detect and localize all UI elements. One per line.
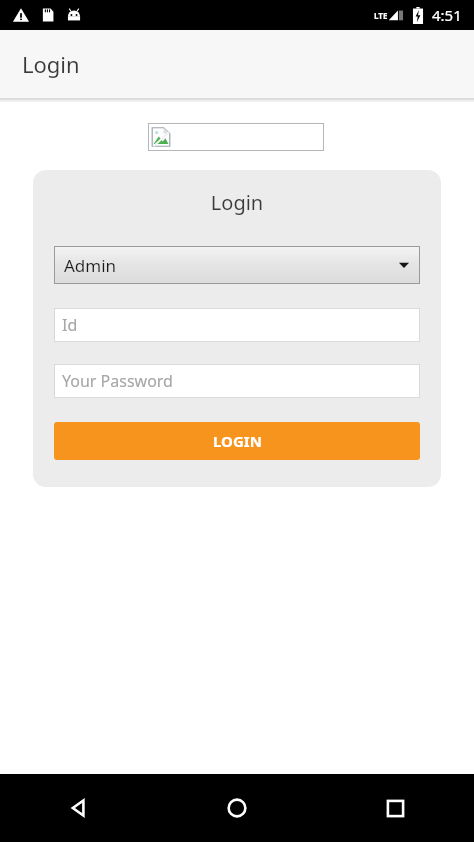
button[interactable]: Recent apps [316, 774, 474, 842]
staticText: Login [33, 189, 441, 216]
button[interactable]: Back [0, 774, 158, 842]
staticText: Id [62, 314, 78, 336]
button[interactable]: Id [54, 308, 420, 342]
staticText: Login [22, 49, 80, 79]
staticText: Admin [64, 254, 117, 277]
button[interactable]: Admin [54, 246, 420, 284]
button[interactable]: LOGIN [54, 422, 420, 460]
staticText: LOGIN [213, 431, 262, 451]
staticText: 4:51 [432, 5, 462, 25]
staticText: LTE [374, 10, 388, 21]
button[interactable]: Home [158, 774, 316, 842]
staticText: Your Password [62, 370, 173, 392]
button[interactable]: Your Password [54, 364, 420, 398]
